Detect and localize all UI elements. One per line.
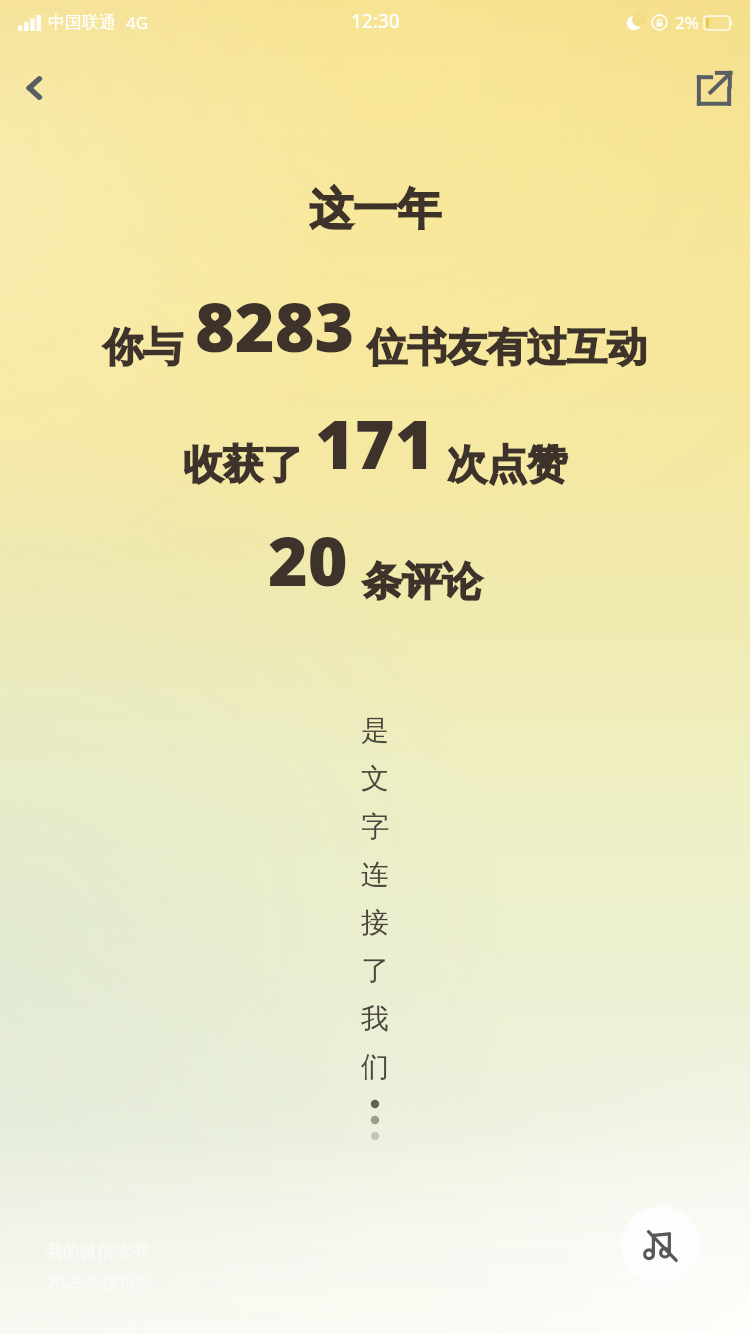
button[interactable]: Share: [684, 58, 744, 118]
staticText: 2025年度报告: [46, 1271, 153, 1294]
staticText: 次点赞: [447, 439, 567, 489]
staticText: 这一年: [309, 182, 441, 237]
staticText: 我: [361, 1001, 389, 1036]
staticText: 12:30: [351, 8, 400, 34]
staticText: 4G: [126, 11, 149, 34]
button[interactable]: Mute music: [621, 1206, 701, 1286]
staticText: 我的微信读书: [46, 1241, 148, 1262]
staticText: 条评论: [362, 556, 482, 606]
staticText: 171: [315, 396, 435, 489]
staticText: 8283: [195, 279, 355, 372]
staticText: 们: [361, 1049, 389, 1084]
button[interactable]: Back: [6, 58, 66, 118]
staticText: 接: [361, 905, 389, 940]
staticText: 你与: [103, 322, 183, 372]
staticText: 20: [268, 513, 348, 606]
staticText: 位书友有过互动: [367, 322, 647, 372]
staticText: 连: [361, 857, 389, 892]
staticText: 字: [361, 809, 389, 844]
staticText: 中国联通: [48, 12, 116, 33]
staticText: 了: [361, 953, 389, 988]
staticText: 收获了: [183, 439, 303, 489]
staticText: 是: [361, 713, 389, 748]
staticText: 2%: [675, 11, 699, 34]
staticText: 文: [361, 761, 389, 796]
